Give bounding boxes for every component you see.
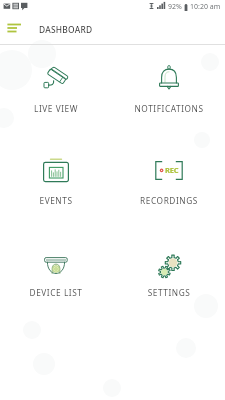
staticText: EVENTS bbox=[2, 195, 110, 206]
button[interactable]: Open navigation menu bbox=[2, 16, 28, 42]
button[interactable]: EVENTS bbox=[2, 141, 110, 209]
button[interactable]: DEVICE LIST bbox=[2, 237, 110, 305]
staticText: REC bbox=[165, 165, 179, 175]
button[interactable]: LIVE VIEW bbox=[2, 49, 110, 117]
staticText: RECORDINGS bbox=[115, 195, 223, 206]
staticText: DASHBOARD bbox=[39, 24, 93, 35]
button[interactable]: NOTIFICATIONS bbox=[115, 49, 223, 117]
staticText: 92% bbox=[168, 2, 182, 12]
staticText: DEVICE LIST bbox=[2, 287, 110, 298]
staticText: NOTIFICATIONS bbox=[115, 103, 223, 114]
button[interactable]: SETTINGS bbox=[115, 237, 223, 305]
staticText: SETTINGS bbox=[115, 287, 223, 298]
button[interactable]: REC bbox=[115, 141, 223, 209]
staticText: LIVE VIEW bbox=[2, 103, 110, 114]
staticText: 10:20 am bbox=[190, 2, 221, 12]
